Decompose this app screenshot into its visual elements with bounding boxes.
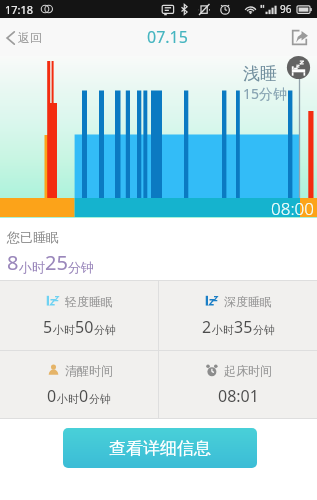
staticText: 08:00: [271, 197, 314, 220]
staticText: 0: [79, 385, 89, 407]
staticText: 清醒时间: [65, 363, 113, 378]
button[interactable]: 轻度睡眠: [0, 281, 158, 350]
staticText: 5: [43, 316, 53, 338]
staticText: 50: [75, 316, 94, 338]
button[interactable]: 起床时间: [159, 351, 317, 418]
staticText: 轻度睡眠: [65, 294, 113, 309]
staticText: 分钟: [253, 323, 275, 337]
staticText: 96: [280, 2, 292, 16]
staticText: 17:18: [5, 2, 34, 17]
staticText: 返回: [18, 30, 42, 45]
staticText: 0: [47, 385, 57, 407]
button[interactable]: 深度睡眠: [159, 281, 317, 350]
staticText: 15分钟: [243, 84, 288, 103]
staticText: 查看详细信息: [109, 438, 211, 459]
staticText: 小时: [212, 323, 234, 337]
staticText: 07.15: [147, 26, 188, 48]
staticText: 小时: [19, 259, 45, 275]
button[interactable]: 查看详细信息: [63, 428, 257, 468]
staticText: 08:01: [218, 385, 259, 407]
staticText: 起床时间: [224, 363, 272, 378]
staticText: 35: [234, 316, 253, 338]
staticText: 分钟: [68, 259, 94, 275]
staticText: 分钟: [89, 392, 111, 406]
button[interactable]: Share: [282, 21, 317, 54]
staticText: 小时: [53, 323, 75, 337]
button[interactable]: 返回: [0, 24, 50, 51]
staticText: 分钟: [94, 323, 116, 337]
staticText: 8: [7, 249, 19, 276]
button[interactable]: 清醒时间: [0, 351, 158, 418]
staticText: 小时: [57, 392, 79, 406]
staticText: 深度睡眠: [224, 294, 272, 309]
staticText: 2: [202, 316, 212, 338]
staticText: 浅睡: [243, 63, 277, 84]
staticText: 您已睡眠: [7, 229, 59, 245]
staticText: 25: [45, 249, 68, 276]
